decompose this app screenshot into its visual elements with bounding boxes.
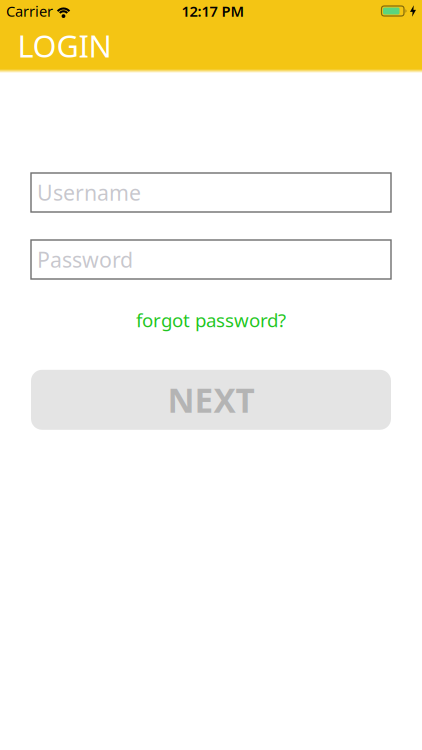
staticText: LOGIN xyxy=(17,25,111,66)
staticText: Carrier xyxy=(6,1,53,21)
staticText: Username xyxy=(37,178,141,207)
button[interactable]: Password xyxy=(31,240,391,279)
button[interactable]: Username xyxy=(31,173,391,212)
staticText: 12:17 PM xyxy=(181,1,244,21)
button[interactable]: forgot password? xyxy=(136,307,286,332)
staticText: NEXT xyxy=(167,378,254,422)
button[interactable]: NEXT xyxy=(31,370,391,430)
staticText: Password xyxy=(37,245,133,274)
staticText: forgot password? xyxy=(136,307,286,332)
